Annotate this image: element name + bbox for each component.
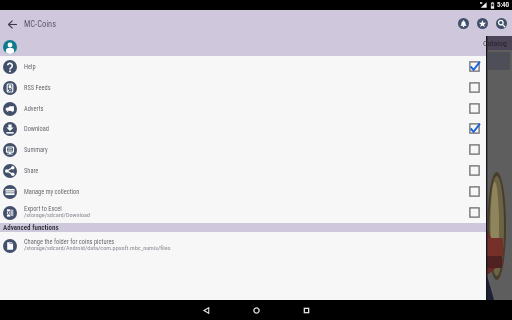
staticText: Download <box>24 125 50 133</box>
button[interactable]: RSS Feeds <box>0 77 512 98</box>
staticText: Export to Excel <box>24 205 62 213</box>
button[interactable]: Toggle Summary <box>459 139 490 160</box>
button[interactable]: Toggle Download <box>459 118 490 139</box>
button[interactable]: Notifications <box>458 18 469 29</box>
staticText: Summary <box>24 146 48 154</box>
button[interactable]: Help <box>0 56 512 77</box>
staticText: Catalogs <box>483 39 509 48</box>
staticText: /storage/sdcard/Android/data/com.ppsoft.… <box>24 244 171 251</box>
staticText: Change the folder for coins pictures <box>24 238 115 246</box>
staticText: Advanced functions <box>3 224 59 232</box>
staticText: /storage/sdcard/Download <box>24 211 91 218</box>
staticText: RSS Feeds <box>24 84 51 92</box>
button[interactable]: Toggle RSS Feeds <box>459 77 490 98</box>
staticText: MC-Coins <box>24 19 56 29</box>
button[interactable]: Search <box>496 18 507 29</box>
button[interactable]: Back <box>181 300 231 320</box>
button[interactable]: Home <box>231 300 281 320</box>
button[interactable]: Download <box>0 118 512 139</box>
button[interactable]: Recents <box>281 300 331 320</box>
button[interactable]: Toggle Help <box>459 56 490 77</box>
staticText: Help <box>24 63 36 71</box>
button[interactable]: Toggle Export to Excel <box>459 202 490 223</box>
button[interactable]: Back <box>4 16 20 32</box>
button[interactable]: Export to Excel <box>0 202 512 223</box>
button[interactable]: Summary <box>0 139 512 160</box>
button[interactable]: Adverts <box>0 98 512 119</box>
button[interactable]: Share <box>0 160 512 181</box>
button[interactable]: Manage my collection <box>0 181 512 202</box>
button[interactable]: Toggle Adverts <box>459 98 490 119</box>
button[interactable]: Account <box>3 40 17 54</box>
staticText: Adverts <box>24 105 44 113</box>
button[interactable]: Change the folder for coins pictures <box>0 235 512 256</box>
button[interactable]: Favorites <box>477 18 488 29</box>
staticText: 5:40 <box>497 1 510 9</box>
button[interactable]: Catalogs <box>486 36 512 300</box>
button[interactable]: Toggle Manage my collection <box>459 181 490 202</box>
staticText: Manage my collection <box>24 188 80 196</box>
button[interactable]: Toggle Share <box>459 160 490 181</box>
staticText: Share <box>24 167 39 175</box>
button[interactable]: Toggle Change the folder for coins pictu… <box>459 235 490 256</box>
